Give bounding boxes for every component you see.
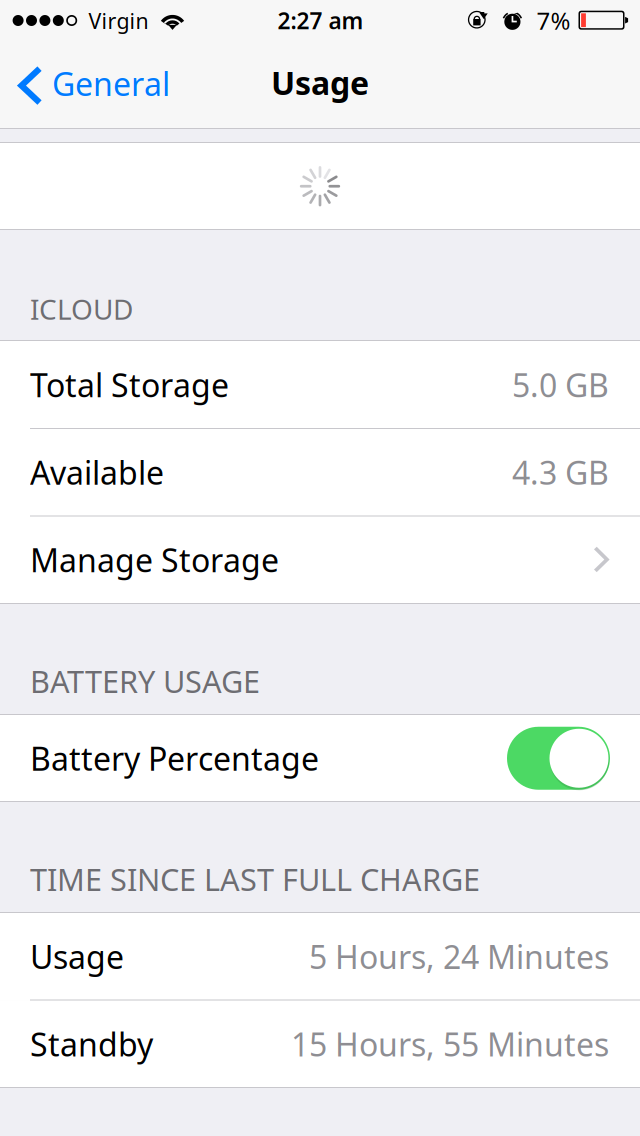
staticText: Available: [30, 451, 164, 493]
button[interactable]: Standby: [0, 1000, 640, 1088]
button[interactable]: Manage Storage: [0, 516, 640, 603]
button[interactable]: Total Storage: [0, 341, 640, 428]
staticText: Virgin: [88, 6, 148, 35]
staticText: Usage: [30, 935, 124, 978]
staticText: 2:27 am: [277, 5, 363, 35]
staticText: 5 Hours, 24 Minutes: [309, 935, 609, 978]
staticText: Usage: [271, 61, 369, 104]
button[interactable]: Battery Percentage: [0, 714, 640, 802]
staticText: Battery Percentage: [30, 737, 319, 779]
staticText: 15 Hours, 55 Minutes: [291, 1023, 609, 1065]
button[interactable]: Usage: [0, 913, 640, 1000]
staticText: 4.3 GB: [512, 451, 609, 493]
staticText: 5.0 GB: [512, 363, 609, 406]
staticText: Manage Storage: [30, 538, 279, 581]
button[interactable]: General: [0, 39, 190, 127]
staticText: Standby: [30, 1023, 153, 1065]
button[interactable]: Available: [0, 428, 640, 516]
staticText: 7%: [536, 4, 570, 36]
staticText: BATTERY USAGE: [30, 661, 260, 701]
staticText: ICLOUD: [30, 290, 133, 327]
staticText: General: [52, 62, 170, 105]
staticText: TIME SINCE LAST FULL CHARGE: [30, 859, 480, 899]
staticText: Total Storage: [30, 363, 229, 406]
